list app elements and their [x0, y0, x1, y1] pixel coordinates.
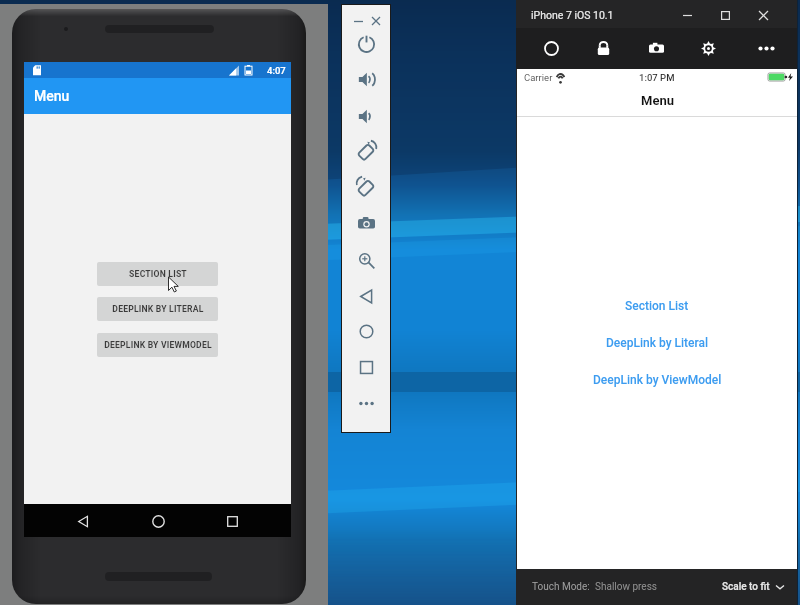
staticText: Shallow press — [595, 581, 657, 593]
staticText: Touch Mode: — [532, 581, 590, 593]
staticText: SECTION LIST — [129, 269, 187, 279]
button[interactable]: Home — [142, 505, 174, 537]
button[interactable]: Close — [748, 0, 778, 30]
button[interactable]: Home — [537, 28, 565, 69]
staticText: iPhone 7 iOS 10.1 — [531, 9, 614, 21]
staticText: Scale to fit — [722, 581, 770, 593]
button[interactable]: SECTION LIST — [97, 262, 218, 286]
button[interactable]: Zoom — [352, 246, 380, 274]
button[interactable]: DEEPLINK BY VIEWMODEL — [97, 333, 218, 357]
staticText: Carrier — [524, 72, 553, 83]
staticText: DeepLink by ViewModel — [593, 373, 722, 387]
button[interactable]: DEEPLINK BY LITERAL — [97, 297, 218, 321]
staticText: 1:07 PM — [639, 72, 675, 83]
button[interactable]: Back — [352, 282, 380, 310]
staticText: 4:07 — [267, 65, 286, 76]
button[interactable]: DeepLink by Literal — [517, 333, 797, 353]
button[interactable]: Volume down — [352, 102, 380, 130]
button[interactable]: Close — [368, 13, 384, 29]
button[interactable]: Section List — [517, 296, 797, 316]
button[interactable]: Rotate left — [352, 136, 380, 164]
button[interactable]: Minimize — [672, 0, 702, 30]
button[interactable]: More — [352, 389, 380, 417]
button[interactable]: Volume up — [352, 65, 380, 93]
button[interactable]: Screenshot — [352, 209, 380, 237]
button[interactable]: Maximize — [710, 0, 740, 30]
button[interactable]: Recents — [216, 505, 248, 537]
button[interactable]: Power — [352, 29, 380, 57]
staticText: Section List — [625, 299, 689, 313]
staticText: DEEPLINK BY VIEWMODEL — [104, 340, 212, 350]
staticText: Menu — [641, 93, 674, 108]
button[interactable]: Scale to fit — [722, 581, 784, 593]
staticText: DEEPLINK BY LITERAL — [112, 304, 204, 314]
button[interactable]: Back — [67, 505, 99, 537]
button[interactable]: Overview — [352, 353, 380, 381]
staticText: DeepLink by Literal — [606, 336, 709, 350]
button[interactable]: Screenshot — [642, 28, 670, 69]
button[interactable]: More — [752, 28, 780, 69]
button[interactable]: Rotate right — [352, 172, 380, 200]
button[interactable]: Home — [352, 317, 380, 345]
button[interactable]: DeepLink by ViewModel — [517, 370, 797, 390]
staticText: Menu — [34, 88, 70, 104]
button[interactable]: Minimize — [350, 13, 366, 29]
button[interactable]: Settings — [694, 28, 722, 69]
button[interactable]: Lock — [589, 28, 617, 69]
